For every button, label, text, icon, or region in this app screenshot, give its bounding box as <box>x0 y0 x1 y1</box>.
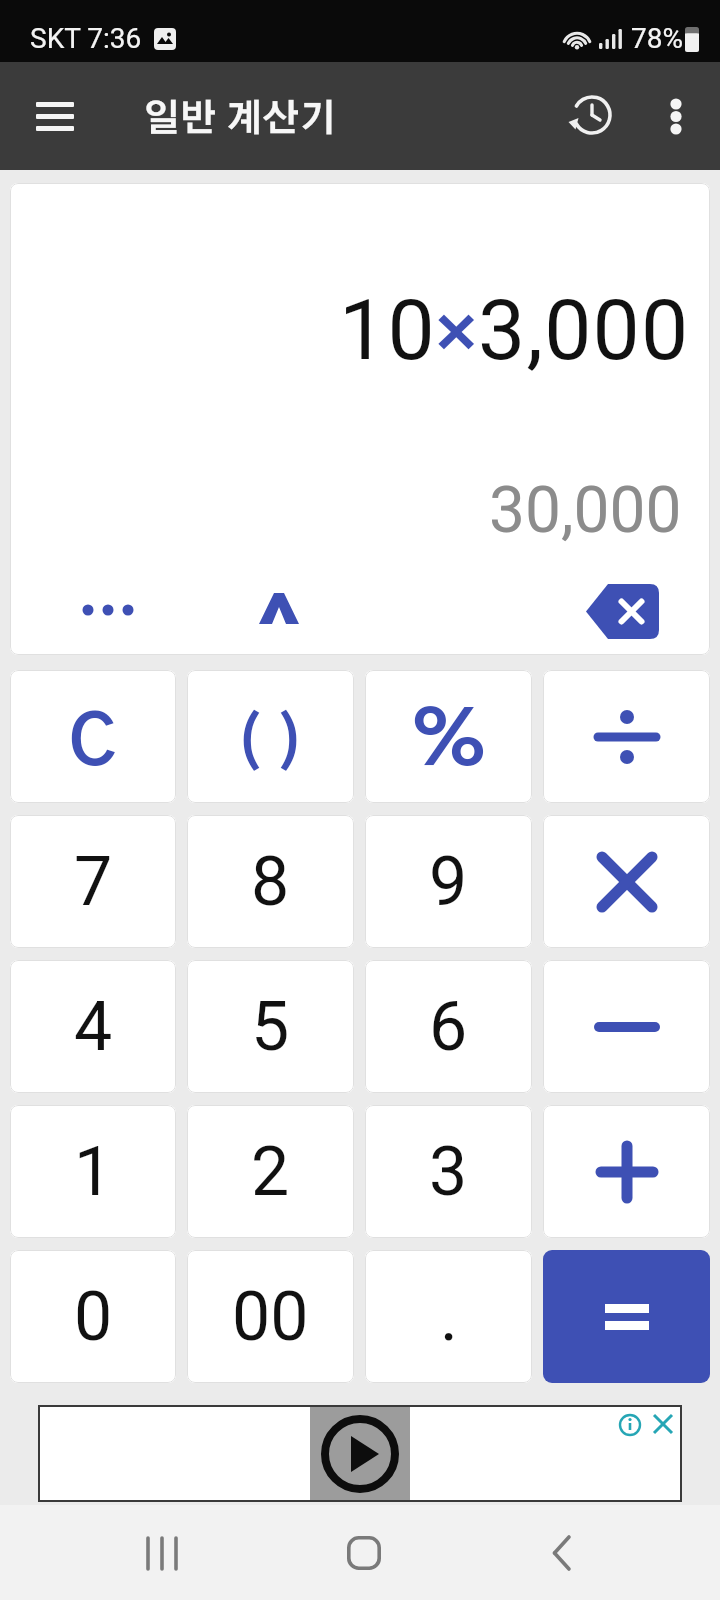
button[interactable] <box>520 1511 604 1595</box>
button[interactable] <box>67 587 147 633</box>
button[interactable]: 00 <box>187 1250 354 1383</box>
button[interactable]: . <box>365 1250 532 1383</box>
button[interactable] <box>543 1250 710 1383</box>
button[interactable] <box>646 86 706 146</box>
staticText: 1 <box>74 1132 113 1212</box>
staticText: 00 <box>232 1277 309 1357</box>
staticText: . <box>440 1277 458 1357</box>
staticText: 7 <box>74 842 113 922</box>
button[interactable] <box>322 1511 406 1595</box>
button[interactable]: 8 <box>187 815 354 948</box>
button[interactable] <box>22 83 88 149</box>
button[interactable] <box>247 580 311 636</box>
button[interactable]: C <box>10 670 176 803</box>
button[interactable] <box>120 1511 204 1595</box>
staticText: 2 <box>251 1132 290 1212</box>
button[interactable] <box>543 1105 710 1238</box>
button[interactable]: 6 <box>365 960 532 1093</box>
staticText: % <box>410 706 488 780</box>
staticText: 9 <box>429 842 468 922</box>
button[interactable] <box>543 815 710 948</box>
button[interactable]: 7 <box>10 815 176 948</box>
button[interactable] <box>559 84 623 148</box>
button[interactable]: 1 <box>10 1105 176 1238</box>
staticText: 5 <box>251 987 290 1067</box>
staticText: 78% <box>631 22 683 55</box>
button[interactable] <box>586 584 659 639</box>
staticText: 일반 계산기 <box>143 101 337 138</box>
staticText: 30,000 <box>489 473 682 548</box>
staticText: 6 <box>429 987 468 1067</box>
staticText: ( ) <box>236 716 305 774</box>
button[interactable]: % <box>365 670 532 803</box>
button[interactable]: 0 <box>10 1250 176 1383</box>
button[interactable] <box>543 670 710 803</box>
staticText: 10×3,000 <box>339 281 690 379</box>
staticText: 0 <box>74 1277 113 1357</box>
button[interactable]: 4 <box>10 960 176 1093</box>
button[interactable] <box>38 1405 682 1502</box>
staticText: SKT 7:36 <box>30 22 142 55</box>
staticText: 8 <box>251 842 290 922</box>
button[interactable]: ( ) <box>187 670 354 803</box>
staticText: 3 <box>429 1132 468 1212</box>
staticText: C <box>69 711 117 779</box>
button[interactable]: 5 <box>187 960 354 1093</box>
button[interactable]: 2 <box>187 1105 354 1238</box>
button[interactable]: 3 <box>365 1105 532 1238</box>
staticText: 4 <box>74 987 113 1067</box>
button[interactable] <box>543 960 710 1093</box>
button[interactable]: 9 <box>365 815 532 948</box>
